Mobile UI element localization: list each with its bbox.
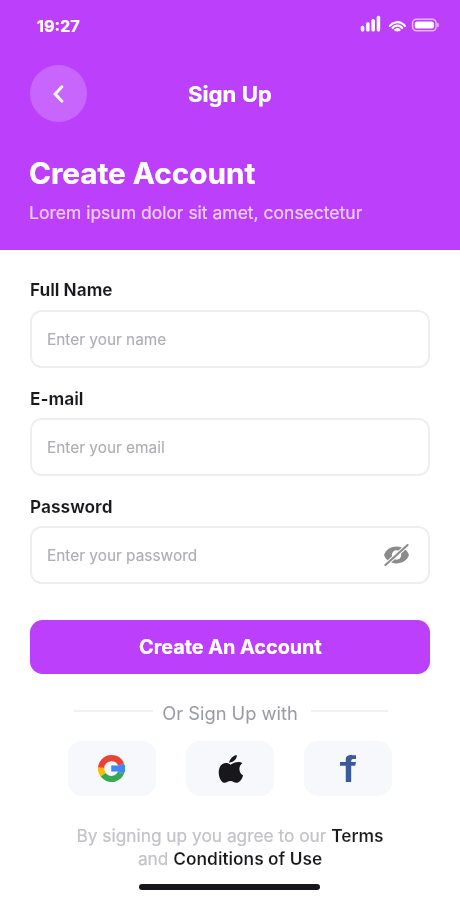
staticText: Enter your email	[47, 438, 165, 457]
button[interactable]: Show password	[381, 540, 411, 570]
staticText: 19:27	[37, 16, 80, 36]
button[interactable]: Back	[30, 65, 87, 122]
button[interactable]: Enter your name	[30, 310, 430, 368]
button[interactable]: Enter your password	[30, 526, 430, 584]
staticText: Enter your password	[47, 546, 198, 565]
staticText: Enter your name	[47, 330, 167, 349]
button[interactable]: By signing up you agree to our Terms and…	[70, 825, 390, 869]
staticText: Or Sign Up with	[0, 702, 460, 724]
button[interactable]: Create An Account	[30, 620, 430, 674]
staticText: Sign Up	[188, 80, 272, 107]
staticText: Password	[30, 496, 113, 517]
button[interactable]: Sign up with Facebook	[304, 741, 392, 796]
staticText: Create An Account	[139, 635, 322, 659]
button[interactable]: Sign up with Apple	[186, 741, 274, 796]
staticText: Lorem ipsum dolor sit amet, consectetur	[29, 202, 363, 223]
button[interactable]: Sign up with Google	[68, 741, 156, 796]
staticText: E-mail	[30, 388, 84, 409]
staticText: Full Name	[30, 279, 113, 300]
button[interactable]: Enter your email	[30, 418, 430, 476]
staticText: Create Account	[29, 155, 256, 191]
